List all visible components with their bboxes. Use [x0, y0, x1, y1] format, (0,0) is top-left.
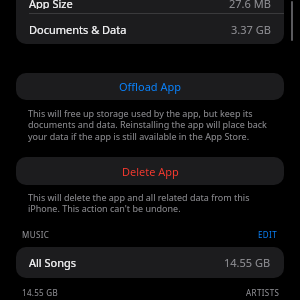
staticText: 14.55 GB [22, 287, 58, 298]
staticText: 3.37 GB [231, 22, 271, 37]
staticText: 14.55 GB [224, 255, 271, 270]
button[interactable]: Offload App [16, 73, 284, 100]
staticText: App Size [29, 0, 73, 9]
button[interactable]: Delete App [16, 157, 284, 185]
staticText: All Songs [29, 255, 77, 270]
staticText: ARTISTS [246, 287, 280, 298]
staticText: Delete App [122, 164, 179, 179]
button[interactable]: Documents & Data [16, 14, 284, 44]
staticText: This will free up storage used by the ap… [28, 107, 274, 143]
button[interactable]: All Songs [16, 247, 284, 278]
staticText: Offload App [119, 79, 182, 94]
other: Scroll position [291, 1, 293, 41]
staticText: This will delete the app and all related… [28, 191, 274, 215]
button[interactable]: EDIT [256, 228, 280, 241]
staticText: Documents & Data [29, 22, 127, 37]
staticText: EDIT [258, 229, 278, 240]
button[interactable]: App Size [16, 0, 284, 13]
staticText: MUSIC [22, 229, 50, 240]
staticText: 27.6 MB [229, 0, 271, 9]
